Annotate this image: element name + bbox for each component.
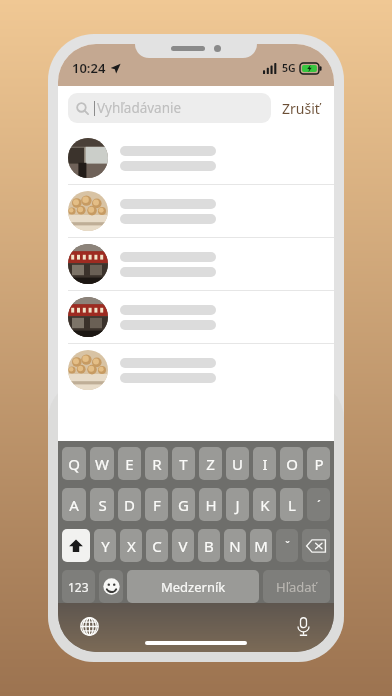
button[interactable]: G bbox=[172, 488, 195, 521]
button[interactable]: D bbox=[118, 488, 141, 521]
button[interactable]: Medzerník bbox=[127, 570, 259, 603]
staticText: Medzerník bbox=[161, 578, 226, 596]
staticText: A bbox=[69, 495, 79, 515]
staticText: R bbox=[152, 454, 162, 474]
button[interactable]: T bbox=[172, 447, 195, 480]
button[interactable]: Zrušiť bbox=[280, 96, 322, 121]
staticText: 5G bbox=[282, 61, 296, 75]
button[interactable] bbox=[58, 132, 334, 184]
staticText: F bbox=[153, 495, 161, 515]
staticText: G bbox=[178, 495, 189, 515]
staticText: S bbox=[98, 495, 107, 515]
staticText: M bbox=[254, 536, 268, 556]
button[interactable]: U bbox=[226, 447, 249, 480]
button[interactable]: ´ bbox=[307, 488, 330, 521]
staticText: I bbox=[262, 454, 268, 474]
button[interactable]: H bbox=[199, 488, 222, 521]
button[interactable]: Hľadať bbox=[263, 570, 330, 603]
staticText: K bbox=[260, 495, 270, 515]
staticText: T bbox=[179, 454, 188, 474]
button[interactable] bbox=[58, 185, 334, 237]
staticText: 10:24 bbox=[72, 59, 106, 77]
staticText: L bbox=[288, 495, 296, 515]
button[interactable]: Q bbox=[62, 447, 86, 480]
button[interactable]: M bbox=[250, 529, 272, 562]
button[interactable]: O bbox=[280, 447, 303, 480]
button[interactable]: Y bbox=[94, 529, 116, 562]
button[interactable]: 123 bbox=[62, 570, 95, 603]
staticText: 123 bbox=[68, 579, 89, 595]
staticText: C bbox=[152, 536, 162, 556]
button[interactable]: K bbox=[253, 488, 276, 521]
button[interactable] bbox=[58, 291, 334, 343]
staticText: P bbox=[314, 454, 324, 474]
staticText: Z bbox=[206, 454, 215, 474]
staticText: D bbox=[124, 495, 135, 515]
staticText: Y bbox=[101, 536, 110, 556]
button[interactable]: I bbox=[253, 447, 276, 480]
button[interactable]: J bbox=[226, 488, 249, 521]
staticText: ˇ bbox=[285, 538, 290, 553]
button[interactable]: Dictation bbox=[288, 611, 318, 641]
staticText: E bbox=[125, 454, 134, 474]
staticText: Hľadať bbox=[276, 578, 317, 596]
button[interactable]: E bbox=[118, 447, 141, 480]
button[interactable]: C bbox=[146, 529, 168, 562]
staticText: N bbox=[229, 536, 241, 556]
button[interactable]: F bbox=[145, 488, 168, 521]
staticText: Vyhľadávanie bbox=[97, 99, 182, 117]
staticText: W bbox=[95, 454, 109, 474]
button[interactable]: Backspace bbox=[302, 529, 330, 562]
button[interactable]: R bbox=[145, 447, 168, 480]
button[interactable]: Z bbox=[199, 447, 222, 480]
staticText: B bbox=[204, 536, 214, 556]
staticText: U bbox=[232, 454, 243, 474]
button[interactable]: ˇ bbox=[276, 529, 298, 562]
staticText: O bbox=[286, 454, 298, 474]
staticText: X bbox=[127, 536, 136, 556]
button[interactable]: A bbox=[62, 488, 86, 521]
staticText: V bbox=[178, 536, 188, 556]
button[interactable] bbox=[58, 344, 334, 396]
button[interactable]: Vyhľadávanie bbox=[68, 93, 271, 123]
button[interactable]: B bbox=[198, 529, 220, 562]
button[interactable]: Change keyboard language bbox=[74, 611, 104, 641]
button[interactable]: P bbox=[307, 447, 330, 480]
staticText: Zrušiť bbox=[282, 99, 320, 118]
button[interactable]: Shift bbox=[62, 529, 90, 562]
staticText: H bbox=[205, 495, 217, 515]
button[interactable]: N bbox=[224, 529, 246, 562]
button[interactable]: X bbox=[120, 529, 142, 562]
button[interactable]: S bbox=[90, 488, 114, 521]
button[interactable]: L bbox=[280, 488, 303, 521]
staticText: J bbox=[235, 495, 240, 515]
staticText: ´ bbox=[317, 497, 321, 513]
button[interactable]: W bbox=[90, 447, 114, 480]
staticText: Q bbox=[68, 454, 80, 474]
button[interactable] bbox=[58, 238, 334, 290]
button[interactable]: Emoji bbox=[99, 570, 123, 603]
button[interactable]: V bbox=[172, 529, 194, 562]
